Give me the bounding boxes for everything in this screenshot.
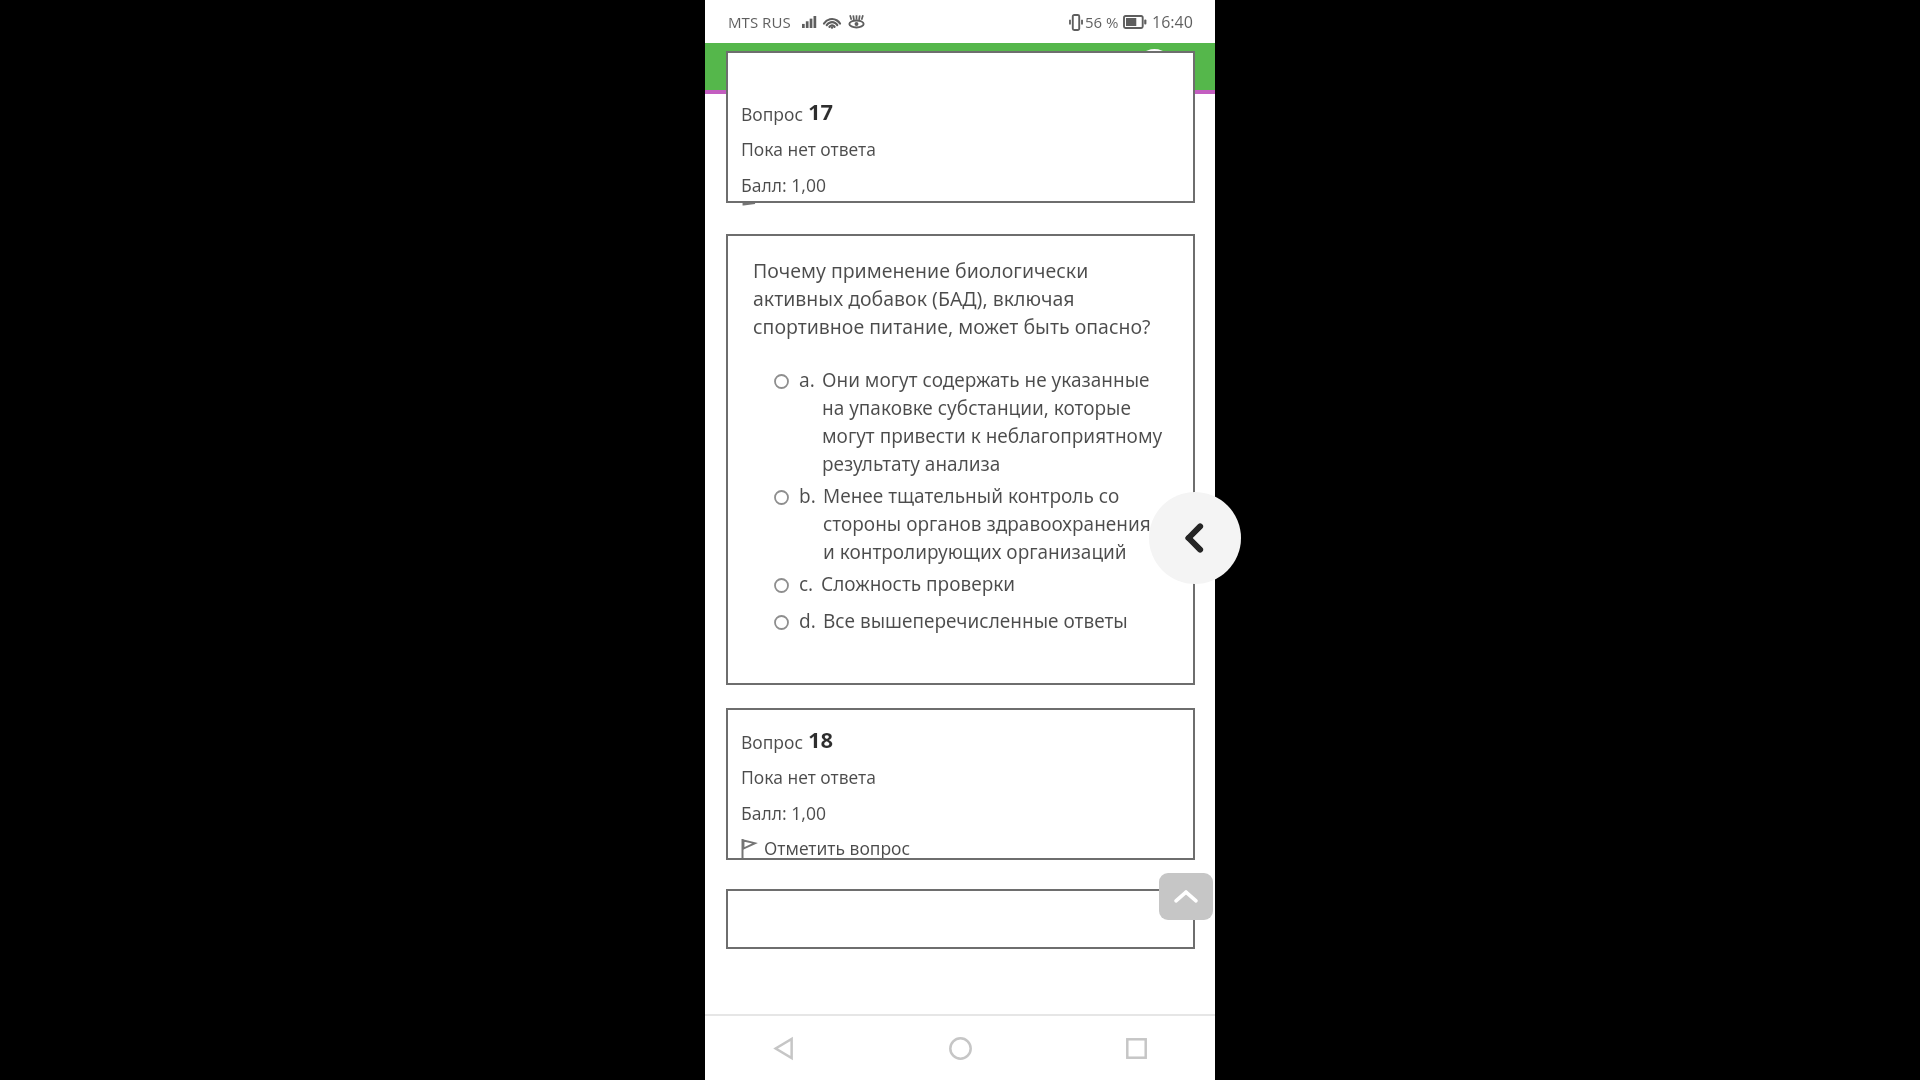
button[interactable]: Menu (729, 48, 767, 86)
staticText: Пока нет ответа (741, 137, 876, 161)
button[interactable]: User account (1136, 49, 1193, 86)
button[interactable]: Вопрос (726, 51, 1195, 203)
staticText: 17 (808, 96, 834, 126)
staticText: Все вышеперечисленные ответы (823, 608, 1128, 634)
button[interactable]: Почему применение биологически активных … (726, 234, 1195, 685)
button[interactable]: Отметить вопрос (741, 836, 911, 860)
button[interactable]: b. (774, 483, 1167, 565)
staticText: c. (799, 571, 814, 597)
staticText: Почему применение биологически активных … (753, 257, 1153, 340)
button[interactable]: Site navigation (981, 45, 1025, 89)
staticText: d. (799, 608, 816, 634)
staticText: Балл: 1,00 (741, 801, 826, 825)
staticText: Балл: 1,00 (741, 173, 826, 197)
staticText: b. (799, 483, 816, 509)
staticText: a. (799, 367, 815, 393)
button[interactable]: Вопрос (726, 708, 1195, 860)
button[interactable]: Scroll to top (1159, 873, 1213, 920)
staticText: 16:40 (1152, 11, 1193, 33)
staticText: Они могут содержать не указанные на упак… (822, 367, 1167, 477)
staticText: Вопрос (741, 102, 808, 126)
staticText: MTS RUS (728, 12, 791, 32)
button[interactable]: Home (933, 1021, 987, 1075)
button[interactable]: Previous page (1149, 492, 1241, 584)
button[interactable]: c. (774, 571, 1167, 597)
button[interactable]: d. (774, 608, 1167, 634)
button[interactable]: Recent apps (1109, 1021, 1163, 1075)
staticText: Отметить вопрос (764, 836, 911, 860)
staticText: Сложность проверки (821, 571, 1016, 597)
staticText: 18 (808, 724, 834, 754)
staticText: Пока нет ответа (741, 765, 876, 789)
button[interactable]: a. (774, 367, 1167, 477)
staticText: Менее тщательный контроль со стороны орг… (823, 483, 1167, 565)
button[interactable]: Back (757, 1021, 811, 1075)
button[interactable]: Search (1033, 46, 1075, 88)
button[interactable]: Notifications (1085, 46, 1127, 88)
staticText: 56 % (1085, 12, 1119, 32)
staticText: Вопрос (741, 730, 808, 754)
